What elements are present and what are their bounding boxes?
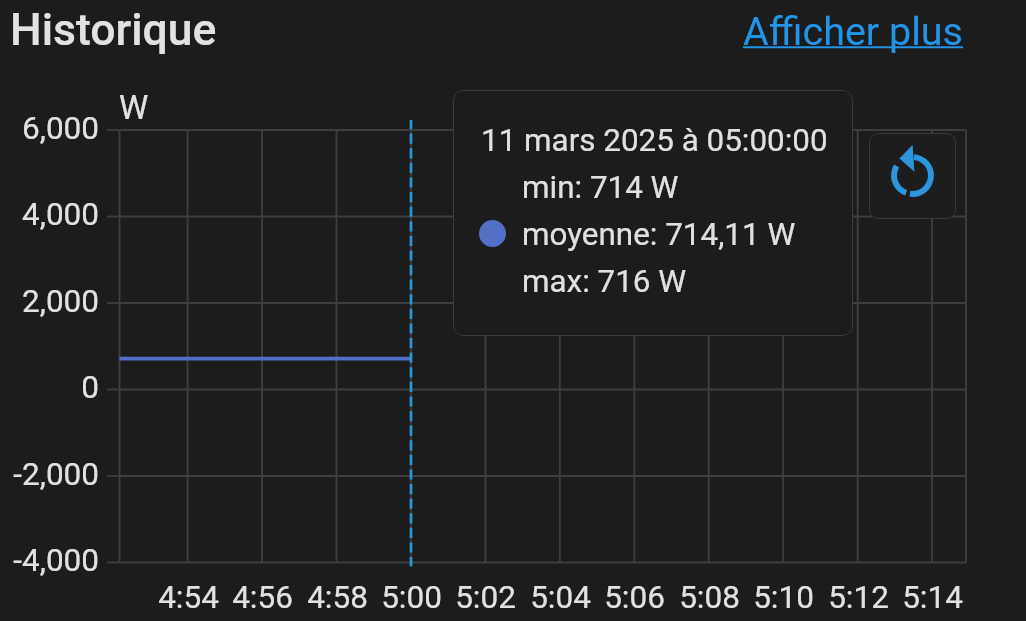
button[interactable]: Historique — [10, 4, 217, 56]
staticText: -2,000 — [13, 456, 99, 493]
staticText: 4,000 — [21, 196, 99, 233]
button[interactable]: Afficher plus — [743, 8, 963, 54]
staticText: max: 716 W — [522, 263, 687, 300]
staticText: moyenne: 714,11 W — [522, 216, 796, 253]
staticText: 4:54 — [158, 579, 219, 616]
staticText: 5:04 — [530, 579, 591, 616]
staticText: 6,000 — [21, 110, 99, 147]
staticText: W — [119, 88, 149, 127]
staticText: 11 mars 2025 à 05:00:00 — [481, 122, 828, 159]
staticText: Afficher plus — [743, 8, 963, 54]
staticText: 5:12 — [828, 579, 889, 616]
staticText: min: 714 W — [522, 169, 679, 206]
staticText: Historique — [10, 4, 217, 56]
staticText: 5:08 — [679, 579, 740, 616]
staticText: 2,000 — [21, 283, 99, 320]
staticText: 4:56 — [232, 579, 293, 616]
staticText: 5:06 — [604, 579, 665, 616]
staticText: 5:14 — [902, 579, 963, 616]
staticText: -4,000 — [13, 542, 99, 579]
staticText: 4:58 — [307, 579, 368, 616]
staticText: 0 — [81, 369, 99, 406]
staticText: 5:02 — [455, 579, 516, 616]
staticText: 5:10 — [753, 579, 814, 616]
staticText: 5:00 — [381, 579, 442, 616]
button[interactable]: Restaurer — [869, 133, 956, 219]
